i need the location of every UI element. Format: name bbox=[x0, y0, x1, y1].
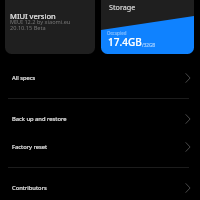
staticText: Back up and restore bbox=[12, 115, 67, 123]
staticText: Occupied bbox=[107, 30, 127, 36]
staticText: /32GB bbox=[142, 42, 156, 48]
button[interactable]: Factory reset bbox=[0, 133, 200, 161]
button[interactable]: Storage bbox=[101, 0, 194, 54]
staticText: MIUI version bbox=[10, 11, 56, 21]
staticText: Storage bbox=[109, 2, 136, 12]
staticText: All specs bbox=[12, 74, 36, 82]
staticText: Contributors bbox=[12, 184, 47, 192]
staticText: Factory reset bbox=[12, 143, 48, 151]
button[interactable]: Back up and restore bbox=[0, 105, 200, 133]
staticText: MIUI 12.2 by xiaomi.eu 20.10.15 Beta bbox=[10, 18, 71, 32]
staticText: 17.4GB bbox=[108, 35, 142, 49]
button[interactable]: Contributors bbox=[0, 174, 200, 200]
button[interactable]: All specs bbox=[0, 64, 200, 92]
button[interactable]: MIUI version bbox=[5, 0, 95, 54]
